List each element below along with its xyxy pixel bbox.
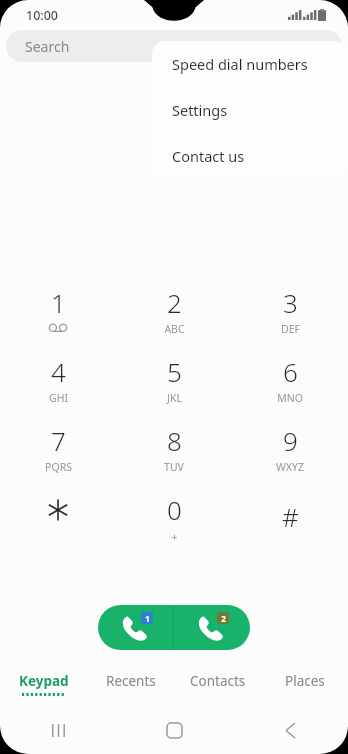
button[interactable]: Search [6, 30, 342, 62]
staticText: 10:00 [26, 7, 59, 24]
button[interactable]: 3 [232, 280, 348, 349]
staticText: DEF [281, 322, 300, 336]
button[interactable]: 6 [232, 349, 348, 418]
staticText: Speed dial numbers [172, 54, 308, 74]
button[interactable]: Recents [87, 672, 174, 706]
staticText: 7 [51, 423, 66, 458]
staticText: Contacts [190, 672, 246, 690]
staticText: Keypad [19, 672, 69, 690]
staticText: GHI [49, 391, 68, 405]
staticText: WXYZ [276, 460, 304, 474]
button[interactable]: Keypad [0, 672, 87, 706]
button[interactable]: 4 [0, 349, 116, 418]
button[interactable]: Call with SIM 1 [98, 605, 173, 650]
button[interactable]: 7 [0, 418, 116, 487]
staticText: 8 [167, 423, 182, 458]
staticText: ABC [164, 322, 185, 336]
staticText: JKL [167, 391, 182, 405]
button[interactable]: Home [116, 706, 232, 754]
button[interactable]: Settings [152, 87, 348, 133]
button[interactable]: 5 [116, 349, 232, 418]
button[interactable]: 8 [116, 418, 232, 487]
staticText: 6 [283, 354, 298, 389]
staticText: 1 [145, 613, 150, 624]
staticText: Search [25, 37, 70, 56]
button[interactable]: 0 [116, 487, 232, 556]
button[interactable]: 2 [116, 280, 232, 349]
staticText: 5 [167, 354, 182, 389]
staticText: 4 [51, 354, 66, 389]
staticText: 0 [167, 492, 182, 527]
staticText: PQRS [45, 460, 72, 474]
staticText: Contact us [172, 146, 245, 166]
staticText: Places [285, 672, 325, 690]
staticText: Recents [106, 672, 156, 690]
button[interactable]: Contacts [174, 672, 261, 706]
staticText: 9 [283, 423, 298, 458]
button[interactable]: Speed dial numbers [152, 41, 348, 87]
staticText: Settings [172, 100, 228, 120]
button[interactable]: Recent apps [0, 706, 116, 754]
staticText: MNO [277, 391, 303, 405]
button[interactable]: Back [232, 706, 348, 754]
staticText: TUV [164, 460, 184, 474]
staticText: 2 [221, 613, 226, 624]
staticText: 3 [283, 285, 298, 320]
button[interactable]: Contact us [152, 133, 348, 179]
staticText: + [171, 529, 178, 544]
button[interactable]: 9 [232, 418, 348, 487]
button[interactable]: # [232, 487, 348, 556]
button[interactable]: 1 [0, 280, 116, 349]
staticText: # [282, 499, 299, 534]
staticText: 2 [167, 285, 182, 320]
button[interactable]: Call with SIM 2 [174, 605, 250, 650]
button[interactable] [0, 487, 116, 556]
staticText: 1 [51, 285, 66, 320]
button[interactable]: Places [261, 672, 348, 706]
